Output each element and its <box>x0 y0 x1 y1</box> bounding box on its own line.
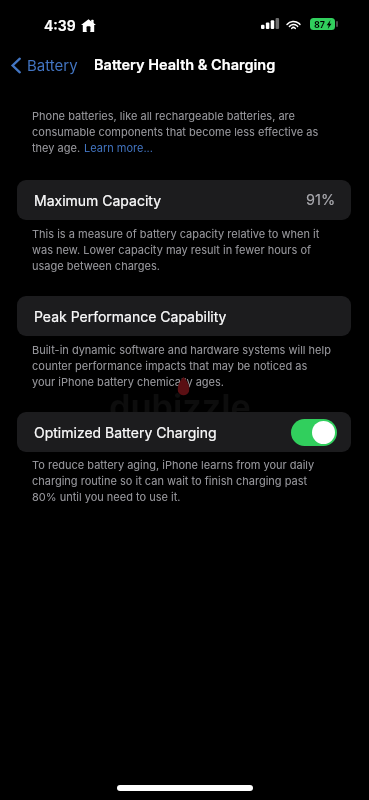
staticText: To reduce battery aging, iPhone learns f… <box>32 458 315 471</box>
staticText: Learn more... <box>84 141 153 154</box>
staticText: they age. <box>32 141 84 154</box>
staticText: consumable components that become less e… <box>32 125 319 138</box>
staticText: Maximum Capacity <box>34 192 162 209</box>
staticText: Built-in dynamic software and hardware s… <box>32 343 331 356</box>
button[interactable]: Maximum Capacity <box>17 180 351 220</box>
staticText: This is a measure of battery capacity re… <box>32 227 320 240</box>
staticText: Optimized Battery Charging <box>34 424 217 441</box>
staticText: Battery Health & Charging <box>94 56 276 74</box>
staticText: Peak Performance Capability <box>34 308 227 325</box>
staticText: 80% until you need to use it. <box>32 490 181 503</box>
staticText: 4:39 <box>44 17 76 34</box>
button[interactable]: Optimized Battery Charging <box>17 412 351 452</box>
staticText: usage between charges. <box>32 259 160 272</box>
staticText: 91% <box>306 191 336 209</box>
staticText: charging routine so it can wait to finis… <box>32 474 308 487</box>
button[interactable]: Peak Performance Capability <box>17 296 351 336</box>
staticText: your iPhone battery chemically ages. <box>32 375 224 388</box>
button[interactable]: Battery <box>0 47 86 83</box>
staticText: dubizzle <box>109 386 251 427</box>
staticText: 87 <box>314 19 326 30</box>
staticText: Battery <box>27 56 78 74</box>
staticText: counter performance impacts that may be … <box>32 359 308 372</box>
staticText: was new. Lower capacity may result in fe… <box>32 243 312 256</box>
button[interactable]: Optimized Battery Charging toggle <box>291 419 337 446</box>
staticText: Phone batteries, like all rechargeable b… <box>32 109 295 122</box>
button[interactable]: Learn more... <box>84 141 153 154</box>
